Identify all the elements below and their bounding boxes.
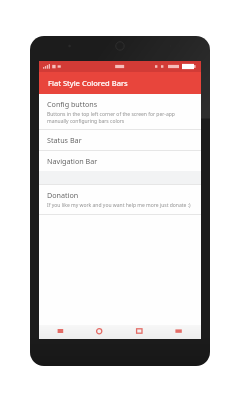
button[interactable]: Navigation Bar <box>39 151 201 171</box>
staticText: Config buttons <box>47 99 98 109</box>
staticText: Flat Style Colored Bars <box>48 78 128 88</box>
button[interactable]: Status Bar <box>39 130 201 150</box>
button[interactable]: Recents <box>132 325 148 339</box>
staticText: Status Bar <box>47 135 82 145</box>
button[interactable]: Donation <box>39 185 201 214</box>
staticText: Navigation Bar <box>47 156 98 166</box>
button[interactable]: Back <box>53 325 69 339</box>
staticText: If you like my work and you want help me… <box>47 202 191 209</box>
button[interactable]: Menu <box>171 325 187 339</box>
staticText: Buttons in the top left corner of the sc… <box>47 111 193 124</box>
button[interactable]: Config buttons <box>39 94 201 129</box>
button[interactable]: Home <box>92 325 108 339</box>
staticText: Donation <box>47 190 79 200</box>
